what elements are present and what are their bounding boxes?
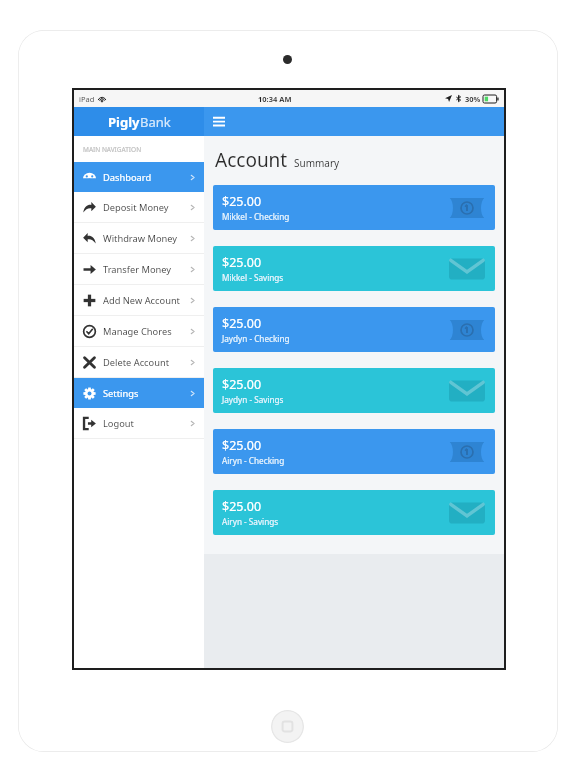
- button[interactable]: Open navigation menu: [209, 112, 229, 132]
- staticText: $25.00: [222, 498, 262, 515]
- staticText: $25.00: [222, 254, 262, 271]
- button[interactable]: Manage Chores: [74, 316, 204, 346]
- button[interactable]: $25.00: [213, 307, 495, 352]
- button[interactable]: Add New Account: [74, 285, 204, 315]
- staticText: Pigly: [108, 113, 140, 131]
- staticText: Deposit Money: [103, 201, 169, 214]
- button[interactable]: Deposit Money: [74, 192, 204, 222]
- button[interactable]: Logout: [74, 408, 204, 438]
- staticText: Transfer Money: [103, 263, 172, 276]
- button[interactable]: $25.00: [213, 368, 495, 413]
- button[interactable]: Transfer Money: [74, 254, 204, 284]
- staticText: $25.00: [222, 376, 262, 393]
- staticText: Settings: [103, 387, 139, 400]
- button[interactable]: Dashboard: [74, 162, 204, 192]
- staticText: 30%: [465, 94, 481, 104]
- staticText: Airyn - Checking: [222, 455, 285, 466]
- staticText: Mikkel - Savings: [222, 272, 284, 283]
- button[interactable]: $25.00: [213, 246, 495, 291]
- staticText: Summary: [294, 156, 340, 170]
- staticText: Jaydyn - Savings: [222, 394, 284, 405]
- staticText: Airyn - Savings: [222, 516, 279, 527]
- staticText: Logout: [103, 417, 134, 430]
- staticText: $25.00: [222, 437, 262, 454]
- button[interactable]: $25.00: [213, 185, 495, 230]
- button[interactable]: $25.00: [213, 490, 495, 535]
- staticText: MAIN NAVIGATION: [83, 145, 142, 154]
- staticText: Withdraw Money: [103, 232, 178, 245]
- button[interactable]: Withdraw Money: [74, 223, 204, 253]
- staticText: iPad: [79, 94, 95, 104]
- staticText: Add New Account: [103, 294, 180, 307]
- staticText: Jaydyn - Checking: [222, 333, 290, 344]
- staticText: $25.00: [222, 193, 262, 210]
- staticText: Manage Chores: [103, 325, 172, 338]
- staticText: $25.00: [222, 315, 262, 332]
- button[interactable]: $25.00: [213, 429, 495, 474]
- button[interactable]: Settings: [74, 378, 204, 408]
- staticText: Mikkel - Checking: [222, 211, 290, 222]
- staticText: Delete Account: [103, 356, 170, 369]
- button[interactable]: Delete Account: [74, 347, 204, 377]
- staticText: Bank: [140, 113, 171, 131]
- staticText: Dashboard: [103, 171, 152, 184]
- staticText: Account: [215, 147, 288, 173]
- staticText: 10:34 AM: [258, 94, 292, 104]
